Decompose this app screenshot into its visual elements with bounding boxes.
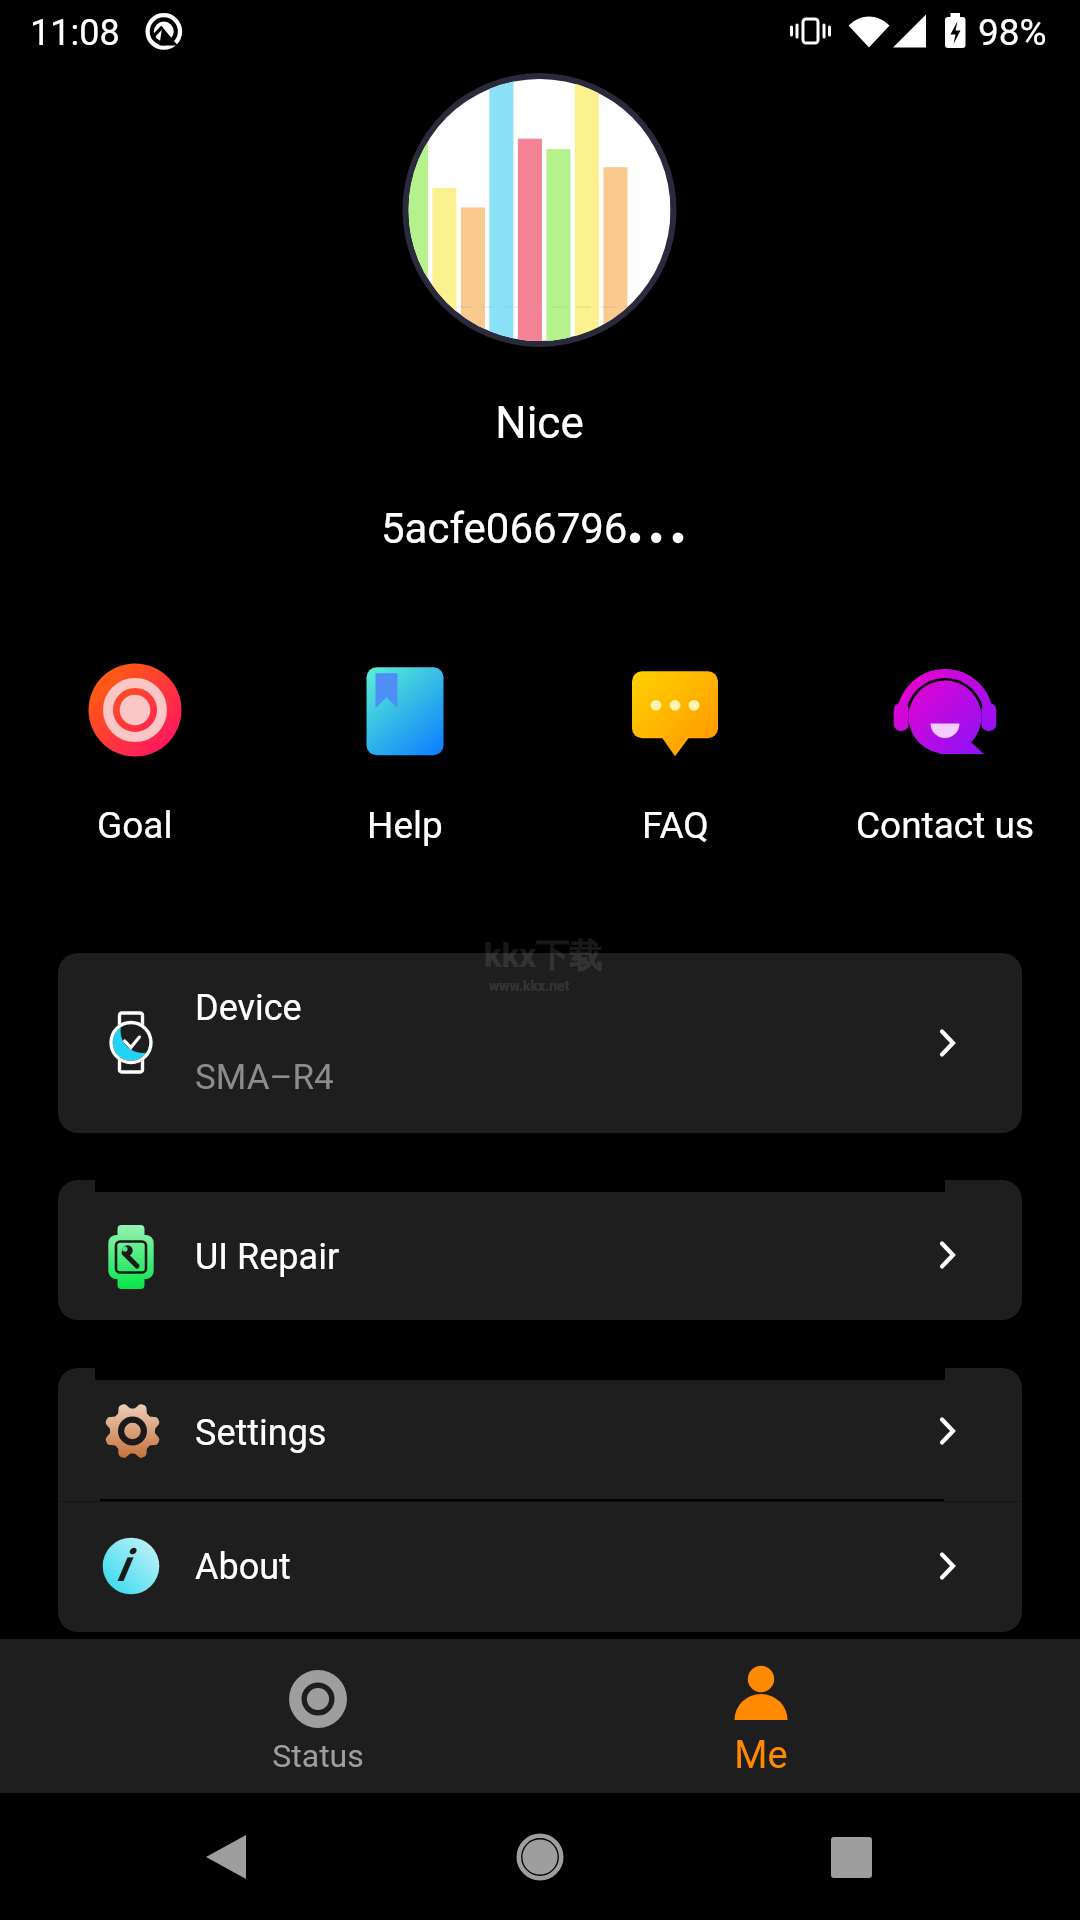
staticText: Settings xyxy=(195,1412,327,1454)
button[interactable]: Contact us xyxy=(810,656,1080,866)
button[interactable]: Home xyxy=(490,1813,590,1901)
button[interactable]: Recent apps xyxy=(801,1813,901,1901)
staticText: 11:08 xyxy=(30,12,120,54)
staticText: kkx下载 xyxy=(484,935,603,977)
staticText: Contact us xyxy=(856,804,1034,847)
staticText: 98% xyxy=(978,11,1047,54)
staticText: i xyxy=(117,1539,129,1592)
staticText: Help xyxy=(367,804,443,847)
staticText: Goal xyxy=(97,804,173,847)
button[interactable]: UI Repair xyxy=(58,1180,1022,1320)
button[interactable]: Status xyxy=(0,1639,540,1793)
staticText: Status xyxy=(272,1737,364,1775)
staticText: Me xyxy=(734,1733,788,1778)
staticText: SMA–R4 xyxy=(195,1057,334,1098)
button[interactable]: Help xyxy=(270,656,540,866)
button[interactable]: Me xyxy=(540,1639,1080,1793)
staticText: About xyxy=(195,1546,291,1588)
button[interactable]: Back xyxy=(176,1813,276,1901)
staticText: www.kkx.net xyxy=(489,978,570,994)
button[interactable]: About xyxy=(58,1499,1022,1632)
staticText: UI Repair xyxy=(195,1236,340,1278)
button[interactable]: Goal xyxy=(0,656,270,866)
staticText: Nice xyxy=(495,397,584,449)
staticText: 5acfe066796 xyxy=(381,504,628,553)
button[interactable]: Settings xyxy=(58,1368,1022,1499)
staticText: FAQ xyxy=(642,804,709,847)
button[interactable]: Device xyxy=(58,953,1022,1133)
staticText: Device xyxy=(195,987,302,1029)
button[interactable]: FAQ xyxy=(540,656,810,866)
